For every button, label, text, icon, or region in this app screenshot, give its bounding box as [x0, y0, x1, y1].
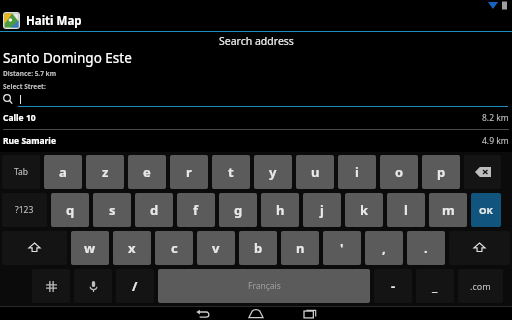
staticText: OK: [479, 204, 493, 217]
button[interactable]: -: [374, 269, 412, 303]
staticText: j: [320, 201, 324, 219]
button[interactable]: a: [44, 155, 82, 189]
button[interactable]: q: [51, 193, 89, 227]
button[interactable]: e: [128, 155, 166, 189]
staticText: Distance: 5.7 km: [3, 69, 56, 78]
staticText: u: [311, 163, 320, 181]
staticText: e: [143, 163, 151, 181]
staticText: x: [128, 239, 136, 257]
button[interactable]: g: [219, 193, 257, 227]
staticText: Search address: [219, 34, 294, 48]
button[interactable]: _: [416, 269, 454, 303]
staticText: ': [340, 239, 344, 257]
button[interactable]: .com: [458, 269, 503, 303]
staticText: g: [234, 201, 243, 219]
staticText: s: [109, 201, 116, 219]
button[interactable]: Haiti Map: [0, 10, 512, 31]
button[interactable]: /: [116, 269, 154, 303]
button[interactable]: l: [387, 193, 425, 227]
button[interactable]: ': [323, 231, 361, 265]
staticText: q: [66, 201, 75, 219]
staticText: .: [424, 239, 428, 257]
staticText: Calle 10: [3, 112, 36, 124]
staticText: _: [432, 277, 438, 295]
button[interactable]: z: [86, 155, 124, 189]
staticText: 4.9 km: [482, 135, 509, 147]
staticText: c: [171, 239, 178, 257]
button[interactable]: v: [197, 231, 235, 265]
button[interactable]: t: [212, 155, 250, 189]
button[interactable]: OK: [471, 193, 501, 227]
button[interactable]: Tab: [2, 155, 40, 189]
staticText: b: [254, 239, 263, 257]
staticText: d: [150, 201, 159, 219]
button[interactable]: u: [296, 155, 334, 189]
button[interactable]: Shift: [449, 231, 510, 265]
staticText: Français: [248, 280, 281, 292]
button[interactable]: ?123: [2, 193, 47, 227]
button[interactable]: p: [422, 155, 460, 189]
staticText: m: [442, 201, 455, 219]
staticText: h: [276, 201, 285, 219]
button[interactable]: x: [113, 231, 151, 265]
staticText: ,: [382, 239, 386, 257]
button[interactable]: Backspace: [464, 155, 501, 189]
button[interactable]: Recent apps: [290, 307, 330, 320]
button[interactable]: r: [170, 155, 208, 189]
button[interactable]: Keyboard settings: [32, 269, 70, 303]
staticText: a: [59, 163, 67, 181]
button[interactable]: o: [380, 155, 418, 189]
button[interactable]: Shift: [2, 231, 67, 265]
button[interactable]: s: [93, 193, 131, 227]
staticText: w: [84, 239, 96, 257]
staticText: l: [404, 201, 408, 219]
staticText: r: [186, 163, 192, 181]
button[interactable]: i: [338, 155, 376, 189]
button[interactable]: m: [429, 193, 467, 227]
button[interactable]: Rue Samarie: [3, 130, 509, 152]
button[interactable]: k: [345, 193, 383, 227]
staticText: z: [102, 163, 109, 181]
button[interactable]: j: [303, 193, 341, 227]
button[interactable]: Search: [2, 91, 508, 107]
staticText: Select Street:: [3, 82, 46, 91]
button[interactable]: f: [177, 193, 215, 227]
staticText: k: [360, 201, 369, 219]
button[interactable]: y: [254, 155, 292, 189]
staticText: 8.2 km: [482, 112, 509, 124]
button[interactable]: c: [155, 231, 193, 265]
staticText: Santo Domingo Este: [3, 49, 132, 67]
staticText: Rue Samarie: [3, 135, 56, 147]
staticText: o: [395, 163, 404, 181]
button[interactable]: h: [261, 193, 299, 227]
button[interactable]: Français: [158, 269, 370, 303]
staticText: Tab: [14, 166, 29, 178]
button[interactable]: .: [407, 231, 445, 265]
staticText: -: [391, 277, 396, 295]
staticText: /: [132, 277, 138, 295]
staticText: t: [228, 163, 234, 181]
button[interactable]: n: [281, 231, 319, 265]
staticText: i: [355, 163, 359, 181]
button[interactable]: ,: [365, 231, 403, 265]
staticText: Haiti Map: [26, 13, 82, 29]
staticText: .com: [470, 280, 491, 292]
button[interactable]: Calle 10: [3, 107, 509, 129]
button[interactable]: d: [135, 193, 173, 227]
button[interactable]: Voice input: [74, 269, 112, 303]
other: Search: [2, 93, 14, 105]
staticText: n: [296, 239, 305, 257]
button[interactable]: w: [71, 231, 109, 265]
staticText: f: [193, 201, 199, 219]
staticText: v: [212, 239, 220, 257]
staticText: p: [437, 163, 446, 181]
button[interactable]: Home: [236, 307, 276, 320]
staticText: ?123: [15, 204, 34, 216]
button[interactable]: b: [239, 231, 277, 265]
button[interactable]: Back: [182, 307, 222, 320]
staticText: y: [269, 163, 277, 181]
